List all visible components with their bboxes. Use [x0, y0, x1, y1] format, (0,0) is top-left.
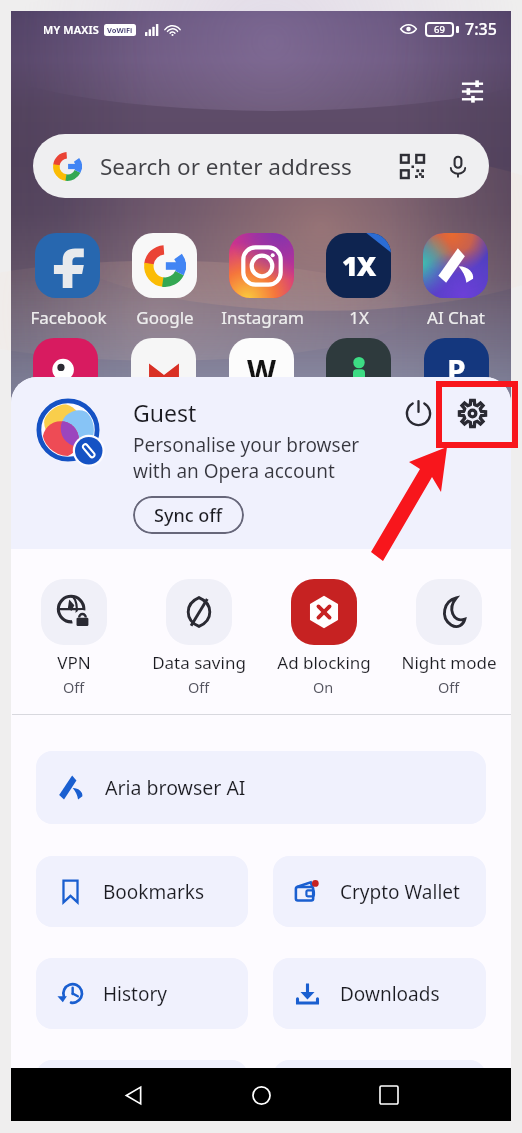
button[interactable]: Sync off [133, 496, 244, 534]
staticText: Instagram [221, 306, 304, 329]
button[interactable]: Aria browser AI [36, 751, 486, 824]
staticText: P [447, 350, 466, 391]
staticText: On [313, 677, 334, 697]
staticText: VPN [57, 651, 91, 674]
staticText: Search or enter address [100, 151, 352, 182]
staticText: Off [438, 677, 460, 697]
staticText: Facebook [30, 306, 107, 329]
button[interactable]: W [229, 338, 294, 403]
button[interactable]: Home [239, 1073, 283, 1117]
button[interactable] [229, 233, 294, 298]
staticText: Off [63, 677, 85, 697]
button[interactable]: History [36, 958, 248, 1029]
button[interactable]: Search or enter address [33, 134, 489, 198]
other: Scan QR code [401, 155, 424, 178]
staticText: VoWiFi [107, 25, 133, 35]
button[interactable]: Recent apps [367, 1073, 411, 1117]
button[interactable]: Exit browser [396, 391, 440, 435]
staticText: MY MAXIS [43, 22, 100, 37]
button[interactable]: Back [111, 1073, 155, 1117]
staticText: Aria browser AI [105, 774, 246, 801]
other: Voice search [448, 155, 468, 179]
button[interactable] [132, 233, 197, 298]
button[interactable] [326, 338, 391, 403]
button[interactable]: Data saving [148, 579, 249, 697]
staticText: Night mode [401, 651, 497, 674]
staticText: Sync off [154, 503, 223, 528]
staticText: Personalise your browser with an Opera a… [133, 432, 360, 483]
staticText: Crypto Wallet [340, 879, 460, 905]
button[interactable]: Bookmarks [36, 856, 248, 927]
staticText: Bookmarks [103, 879, 205, 905]
button[interactable] [273, 1060, 486, 1121]
staticText: 1X [342, 247, 376, 284]
staticText: Downloads [340, 981, 440, 1007]
staticText: Ad blocking [277, 651, 371, 674]
button[interactable] [33, 338, 98, 403]
button[interactable]: VPN [23, 579, 124, 697]
button[interactable]: Ad blocking [273, 579, 374, 697]
button[interactable]: P [424, 338, 489, 403]
staticText: 69 [434, 23, 445, 36]
button[interactable] [35, 233, 100, 298]
button[interactable]: Crypto Wallet [273, 856, 486, 927]
staticText: AI Chat [427, 306, 485, 329]
button[interactable] [36, 1060, 248, 1121]
button[interactable] [131, 338, 196, 403]
staticText: W [247, 350, 277, 391]
staticText: History [103, 981, 167, 1007]
staticText: Off [188, 677, 210, 697]
button[interactable]: Night mode [398, 579, 499, 697]
staticText: Guest [133, 397, 197, 428]
staticText: Data saving [152, 651, 246, 674]
staticText: 1X [349, 306, 369, 329]
button[interactable]: 1X [326, 233, 391, 298]
button[interactable]: Downloads [273, 958, 486, 1029]
button[interactable]: Settings [450, 391, 494, 435]
button[interactable] [423, 233, 488, 298]
staticText: Google [136, 306, 194, 329]
button[interactable]: Customize start page [451, 70, 493, 112]
staticText: 7:35 [465, 18, 497, 40]
